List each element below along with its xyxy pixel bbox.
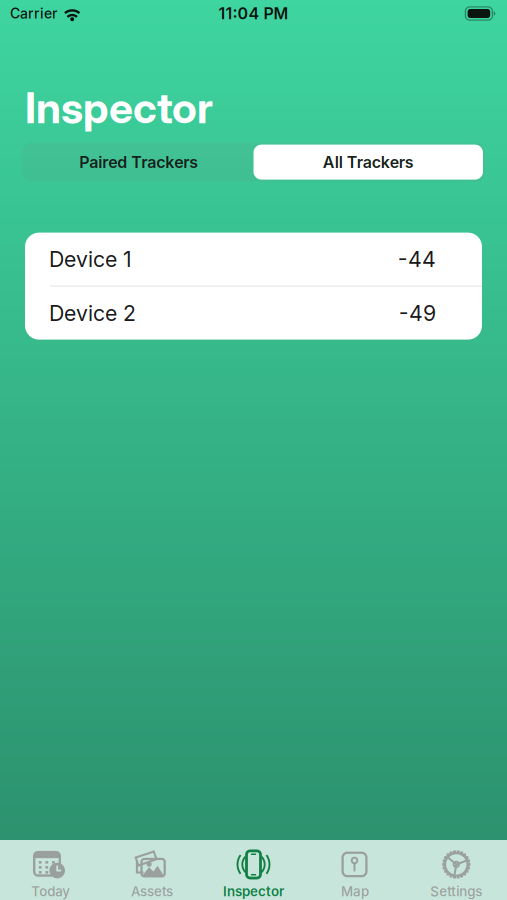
button[interactable]: Settings [406, 840, 507, 900]
staticText: Inspector [25, 82, 213, 134]
button[interactable]: Map [304, 840, 406, 900]
button[interactable]: Device 2 [25, 287, 482, 340]
button[interactable]: Paired Trackers [24, 145, 253, 180]
staticText: -49 [399, 300, 436, 326]
staticText: All Trackers [323, 152, 414, 172]
staticText: Today [31, 883, 70, 899]
staticText: Paired Trackers [79, 152, 198, 172]
button[interactable]: Assets [101, 840, 203, 900]
button[interactable]: Inspector [203, 840, 304, 900]
staticText: Assets [131, 883, 173, 899]
staticText: Device 1 [49, 246, 132, 272]
staticText: -44 [398, 246, 436, 272]
button[interactable]: All Trackers [253, 145, 483, 180]
staticText: Settings [430, 883, 482, 899]
staticText: 11:04 PM [218, 4, 288, 23]
button[interactable]: Device 1 [25, 233, 482, 286]
staticText: Inspector [223, 883, 284, 899]
staticText: Map [341, 883, 369, 899]
button[interactable]: Today [0, 840, 101, 900]
staticText: Carrier [10, 5, 57, 22]
staticText: Device 2 [49, 300, 136, 326]
